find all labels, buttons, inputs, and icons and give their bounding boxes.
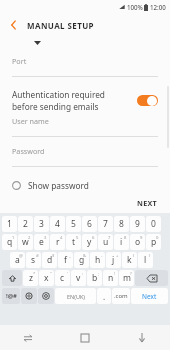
- button[interactable]: 2: [18, 216, 33, 232]
- staticText: *: [33, 271, 36, 277]
- button[interactable]: u: [98, 234, 113, 250]
- button[interactable]: Password: [0, 146, 170, 167]
- staticText: k: [127, 254, 132, 266]
- button[interactable]: l: [138, 252, 153, 268]
- button[interactable]: Settings: [21, 288, 37, 304]
- button[interactable]: v: [71, 270, 86, 286]
- button[interactable]: o: [130, 234, 145, 250]
- button[interactable]: 7: [98, 216, 113, 232]
- button[interactable]: e: [34, 234, 49, 250]
- button[interactable]: s: [26, 252, 41, 268]
- button[interactable]: c: [55, 270, 70, 286]
- button[interactable]: t: [66, 234, 81, 250]
- staticText: 9: [135, 218, 140, 230]
- staticText: -: [101, 253, 103, 259]
- button[interactable]: Expand security type: [30, 36, 44, 50]
- button[interactable]: z: [23, 270, 38, 286]
- button[interactable]: 8: [114, 216, 129, 232]
- button[interactable]: p: [146, 234, 161, 250]
- button[interactable]: 9: [130, 216, 145, 232]
- staticText: f: [64, 254, 67, 266]
- staticText: 7: [108, 235, 111, 241]
- staticText: t: [72, 236, 76, 248]
- button[interactable]: a: [10, 252, 25, 268]
- button[interactable]: Port: [0, 56, 170, 77]
- staticText: $: [52, 253, 55, 259]
- button[interactable]: Back: [5, 17, 21, 33]
- staticText: MANUAL SETUP: [27, 20, 94, 31]
- staticText: 4: [60, 235, 63, 241]
- staticText: 2: [23, 218, 28, 230]
- staticText: 1: [12, 235, 15, 241]
- staticText: 8: [119, 218, 124, 230]
- staticText: 1: [7, 218, 12, 230]
- staticText: m: [123, 272, 131, 284]
- button[interactable]: k: [122, 252, 137, 268]
- staticText: 7: [103, 218, 108, 230]
- staticText: e: [39, 236, 44, 248]
- button[interactable]: NEXT: [133, 196, 162, 210]
- button[interactable]: Home: [56, 325, 113, 350]
- staticText: !: [114, 271, 116, 277]
- button[interactable]: n: [103, 270, 118, 286]
- button[interactable]: q: [2, 234, 17, 250]
- button[interactable]: d: [42, 252, 57, 268]
- staticText: 0: [151, 218, 156, 230]
- staticText: r: [56, 236, 60, 248]
- staticText: g: [79, 254, 85, 266]
- button[interactable]: g: [74, 252, 89, 268]
- staticText: a: [15, 254, 20, 266]
- staticText: (: [133, 253, 135, 259]
- staticText: b: [92, 272, 98, 284]
- staticText: EN(UK): [67, 293, 85, 300]
- button[interactable]: !@#: [2, 288, 20, 304]
- button[interactable]: w: [18, 234, 33, 250]
- button[interactable]: Recents: [0, 325, 56, 350]
- staticText: x: [44, 272, 49, 284]
- button[interactable]: Next: [131, 288, 168, 304]
- button[interactable]: i: [114, 234, 129, 250]
- button[interactable]: x: [39, 270, 54, 286]
- button[interactable]: y: [82, 234, 97, 250]
- button[interactable]: Hide keyboard: [113, 325, 170, 350]
- staticText: Show password: [28, 180, 89, 191]
- staticText: u: [103, 236, 109, 248]
- staticText: &: [83, 253, 87, 259]
- staticText: 3: [44, 235, 47, 241]
- button[interactable]: Show password: [0, 176, 170, 194]
- staticText: h: [95, 254, 101, 266]
- staticText: 8: [124, 235, 127, 241]
- staticText: _: [69, 253, 71, 259]
- staticText: User name: [12, 116, 49, 126]
- button[interactable]: h: [90, 252, 105, 268]
- button[interactable]: 0: [146, 216, 161, 232]
- staticText: .com: [114, 292, 128, 300]
- button[interactable]: Backspace: [135, 270, 168, 286]
- button[interactable]: Shift: [2, 270, 22, 286]
- staticText: d: [47, 254, 53, 266]
- staticText: c: [60, 272, 65, 284]
- staticText: y: [87, 236, 92, 248]
- button[interactable]: 4: [50, 216, 65, 232]
- button[interactable]: 1: [2, 216, 17, 232]
- staticText: Authentication required: [12, 89, 105, 100]
- button[interactable]: r: [50, 234, 65, 250]
- button[interactable]: j: [106, 252, 121, 268]
- button[interactable]: .com: [112, 288, 130, 304]
- staticText: o: [135, 236, 141, 248]
- button[interactable]: b: [87, 270, 102, 286]
- staticText: 6: [92, 235, 95, 241]
- button[interactable]: Authentication required: [0, 87, 170, 113]
- button[interactable]: m: [119, 270, 134, 286]
- button[interactable]: 6: [82, 216, 97, 232]
- button[interactable]: 5: [66, 216, 81, 232]
- staticText: Password: [12, 146, 45, 156]
- button[interactable]: User name: [0, 116, 170, 137]
- button[interactable]: 3: [34, 216, 49, 232]
- button[interactable]: f: [58, 252, 73, 268]
- button[interactable]: .: [97, 288, 111, 304]
- staticText: v: [76, 272, 81, 284]
- button[interactable]: EN(UK): [55, 288, 96, 304]
- staticText: ': [67, 271, 68, 277]
- button[interactable]: At sign: [38, 288, 54, 304]
